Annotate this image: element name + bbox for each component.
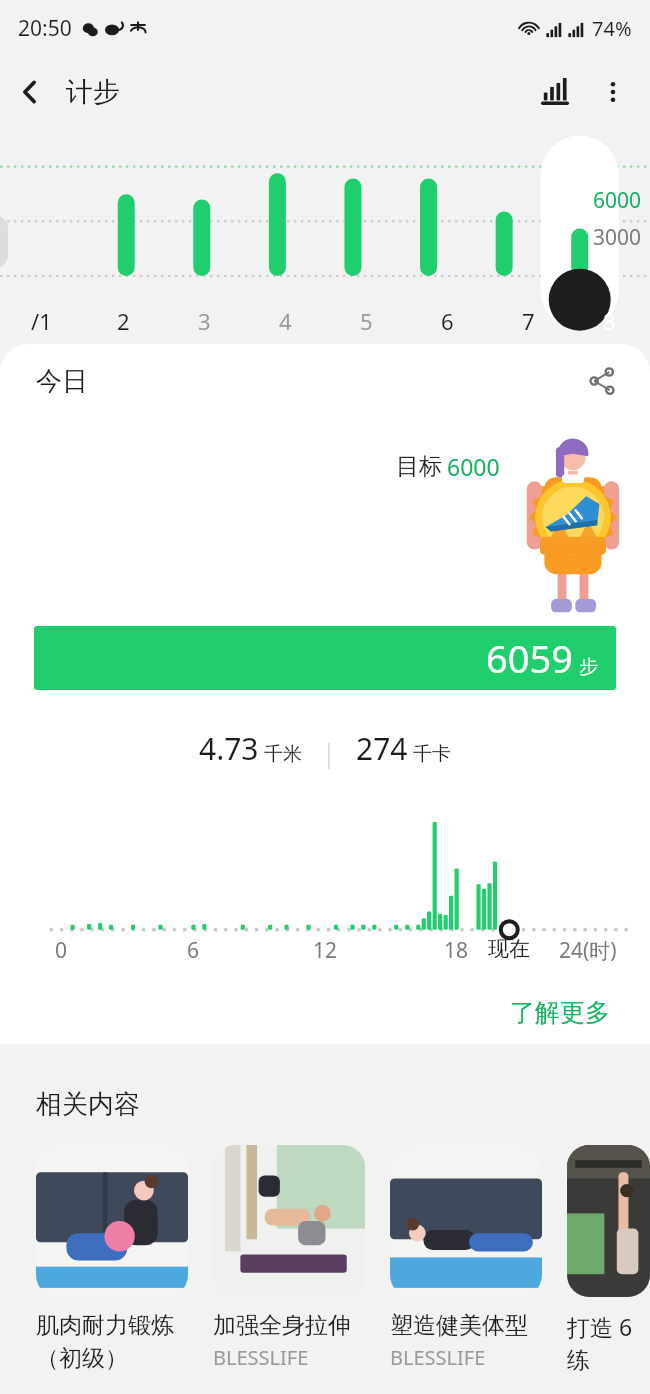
staticText: 2 [117, 306, 130, 336]
staticText: 18 [444, 936, 469, 965]
staticText: 今日 [36, 365, 88, 398]
staticText: 6000 [447, 451, 500, 482]
staticText: 练 [567, 1346, 590, 1375]
button[interactable]: 塑造健美体型 [390, 1145, 542, 1371]
staticText: 了解更多 [510, 997, 610, 1028]
button[interactable]: More options [584, 63, 642, 121]
staticText: 7 [522, 306, 535, 336]
staticText: 肌肉耐力锻炼 [36, 1311, 174, 1340]
button[interactable]: Chart [526, 63, 584, 121]
staticText: 5 [360, 306, 373, 336]
staticText: BLESSLIFE [213, 1344, 309, 1371]
staticText: 现在 [488, 936, 530, 962]
staticText: 步 [579, 655, 598, 679]
staticText: 6059 [486, 632, 573, 684]
staticText: 相关内容 [36, 1088, 140, 1121]
staticText: 24(时) [559, 936, 617, 965]
staticText: （初级） [36, 1344, 128, 1373]
staticText: 6 [441, 306, 454, 336]
button[interactable]: 加强全身拉伸 [213, 1145, 365, 1371]
staticText: 6000 [593, 186, 642, 215]
staticText: 千卡 [413, 742, 451, 766]
staticText: 6 [187, 936, 200, 965]
staticText: 74% [592, 15, 632, 42]
staticText: 4 [279, 306, 292, 336]
staticText: 千米 [264, 742, 302, 766]
staticText: /1 [31, 306, 52, 336]
staticText: 塑造健美体型 [390, 1311, 528, 1340]
button[interactable]: 了解更多 [504, 991, 616, 1034]
button[interactable]: 打造 6 块 [567, 1145, 650, 1375]
staticText: 4.73 [199, 728, 259, 769]
staticText: 打造 6 块 [567, 1311, 650, 1342]
staticText: 目标 [396, 452, 442, 481]
staticText: 12 [313, 936, 338, 965]
staticText: 加强全身拉伸 [213, 1311, 351, 1340]
staticText: 3 [198, 306, 211, 336]
staticText: 3000 [593, 223, 642, 252]
staticText: 计步 [66, 75, 120, 109]
button[interactable]: 6059 [34, 626, 616, 690]
button[interactable]: Share [576, 355, 628, 407]
button[interactable]: Back [0, 62, 60, 122]
button[interactable]: 肌肉耐力锻炼 [36, 1145, 188, 1373]
staticText: 20:50 [18, 14, 72, 43]
staticText: 274 [356, 728, 408, 769]
staticText: 8 [603, 306, 616, 336]
staticText: 0 [55, 936, 68, 965]
staticText: BLESSLIFE [390, 1344, 486, 1371]
